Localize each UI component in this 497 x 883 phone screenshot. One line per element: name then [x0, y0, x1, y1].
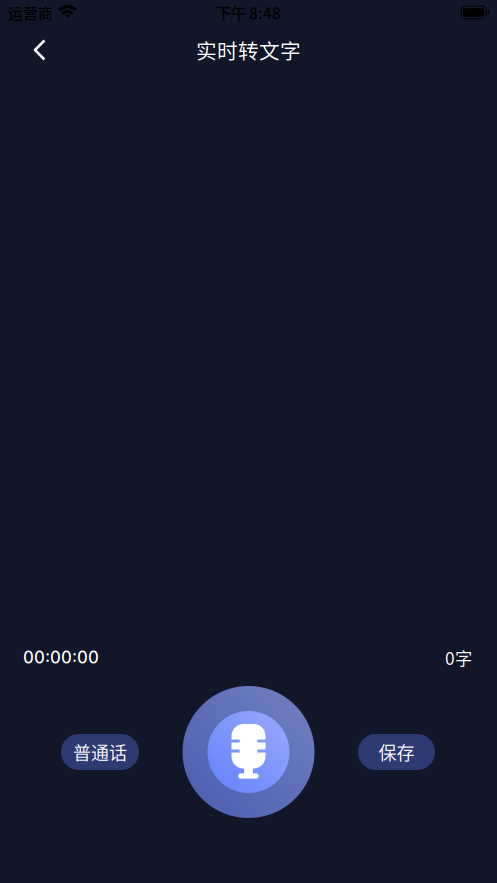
staticText: 下午 8:48 — [216, 1, 281, 24]
button[interactable]: 保存 — [358, 734, 435, 770]
staticText: 运营商 — [8, 2, 53, 23]
staticText: 保存 — [378, 739, 414, 765]
staticText: 实时转文字 — [196, 35, 301, 65]
staticText: 0字 — [445, 645, 472, 670]
button[interactable]: 普通话 — [61, 734, 139, 770]
button[interactable]: 开始录音 — [182, 686, 314, 818]
staticText: 00:00:00 — [23, 647, 99, 668]
staticText: 普通话 — [73, 739, 127, 765]
button[interactable]: 返回 — [0, 27, 66, 72]
